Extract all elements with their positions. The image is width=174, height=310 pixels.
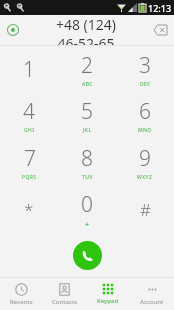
staticText: * <box>24 198 34 221</box>
staticText: # <box>140 198 151 221</box>
staticText: 0 <box>81 190 93 219</box>
staticText: PQRS <box>22 174 37 181</box>
button[interactable]: Call <box>73 241 102 270</box>
button[interactable]: 6 <box>116 92 174 139</box>
staticText: ABC <box>82 81 93 88</box>
button[interactable]: 4 <box>0 92 58 139</box>
button[interactable]: Recents <box>0 278 43 310</box>
button[interactable]: * <box>0 186 58 233</box>
button[interactable]: 7 <box>0 139 58 186</box>
button[interactable]: 5 <box>58 92 116 139</box>
staticText: +48 (124) 46-52-65 <box>26 15 146 45</box>
button[interactable]: Add to contacts <box>0 17 26 43</box>
staticText: Account <box>140 298 164 306</box>
button[interactable]: 9 <box>116 139 174 186</box>
staticText: + <box>85 220 90 230</box>
button[interactable]: 2 <box>58 46 116 92</box>
staticText: GHI <box>24 127 35 134</box>
staticText: 4 <box>23 97 35 126</box>
button[interactable]: 1 <box>0 46 58 92</box>
staticText: 5 <box>81 97 93 126</box>
staticText: 1 <box>23 55 35 84</box>
staticText: JKL <box>83 127 92 134</box>
staticText: Contacts <box>52 298 78 306</box>
button[interactable]: Keypad <box>86 278 130 310</box>
staticText: 2 <box>81 51 93 80</box>
staticText: 7 <box>24 144 36 173</box>
button[interactable]: 8 <box>58 139 116 186</box>
staticText: 9 <box>139 144 151 173</box>
staticText: TUV <box>82 174 93 181</box>
staticText: Recents <box>10 298 33 306</box>
button[interactable]: 0 <box>58 186 116 233</box>
staticText: 8 <box>81 144 93 173</box>
staticText: 6 <box>139 97 151 126</box>
staticText: DEF <box>140 81 151 88</box>
staticText: 12:13 <box>148 2 172 14</box>
staticText: Keypad <box>97 297 119 305</box>
button[interactable]: Backspace <box>146 16 174 44</box>
staticText: 3 <box>139 51 151 80</box>
button[interactable]: # <box>116 186 174 233</box>
staticText: WXYZ <box>137 174 153 181</box>
button[interactable]: Account <box>130 278 174 310</box>
button[interactable]: 3 <box>116 46 174 92</box>
button[interactable]: Contacts <box>43 278 86 310</box>
staticText: MNO <box>138 127 152 134</box>
